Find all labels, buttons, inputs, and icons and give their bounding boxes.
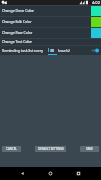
staticText: DEFAULT SETTINGS bbox=[38, 147, 64, 151]
button[interactable]: DEFAULT SETTINGS bbox=[35, 146, 66, 152]
staticText: Change Row Color bbox=[2, 30, 91, 35]
button[interactable]: Change Done Color bbox=[0, 5, 101, 16]
staticText: Change Edit Color bbox=[2, 19, 91, 24]
button[interactable]: Change Edit Color bbox=[0, 16, 101, 27]
button[interactable]: Reminder toggle bbox=[91, 47, 99, 54]
button[interactable]: Change Row Color bbox=[0, 27, 101, 38]
staticText: Change Done Color bbox=[2, 8, 91, 13]
staticText: hour(s) bbox=[58, 48, 70, 53]
staticText: Reminding task list every bbox=[2, 48, 43, 53]
staticText: CANCEL bbox=[6, 147, 17, 151]
staticText: 30 bbox=[50, 48, 55, 53]
button[interactable]: Home bbox=[45, 168, 56, 179]
button[interactable]: Change Text Color bbox=[0, 38, 101, 45]
button[interactable]: Recents bbox=[73, 168, 84, 179]
button[interactable]: SAVE bbox=[80, 146, 99, 152]
button[interactable]: CANCEL bbox=[2, 146, 21, 152]
staticText: 4:02 bbox=[92, 0, 100, 5]
staticText: SAVE bbox=[86, 147, 93, 151]
button[interactable]: Reminding task list every bbox=[0, 45, 101, 55]
staticText: Change Text Color bbox=[2, 39, 101, 44]
button[interactable]: Back bbox=[17, 168, 28, 179]
